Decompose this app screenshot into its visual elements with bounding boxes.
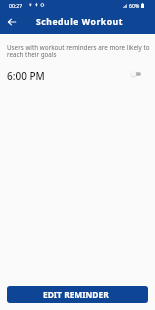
button[interactable]: Back xyxy=(1,11,23,33)
staticText: Users with workout reminders are more li… xyxy=(7,43,151,59)
button[interactable]: 6:00 PM xyxy=(0,67,155,85)
staticText: 6:00 PM xyxy=(7,69,45,83)
button[interactable]: EDIT REMINDER xyxy=(7,286,148,303)
staticText: EDIT REMINDER xyxy=(43,289,109,300)
staticText: 60% xyxy=(129,2,140,9)
button[interactable]: Enable reminder xyxy=(129,67,145,81)
staticText: Schedule Workout xyxy=(36,16,123,28)
staticText: 00:27 xyxy=(9,2,23,9)
